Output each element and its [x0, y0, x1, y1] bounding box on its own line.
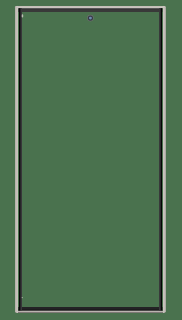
button[interactable]: Phone screen [0, 0, 182, 320]
